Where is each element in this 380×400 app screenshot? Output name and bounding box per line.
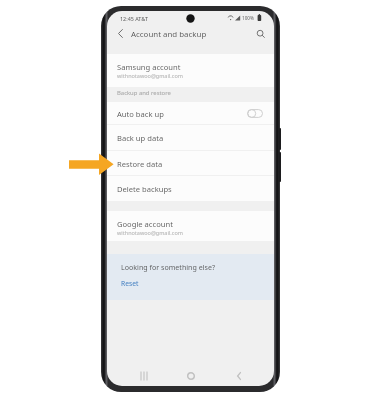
button[interactable]: Recent apps: [137, 368, 151, 384]
button[interactable]: Restore data: [107, 150, 274, 176]
button[interactable]: Back: [114, 27, 127, 40]
staticText: Google account: [117, 219, 173, 229]
button[interactable]: [107, 54, 274, 87]
button[interactable]: Reset: [121, 278, 151, 289]
staticText: withnotawoo@gmail.com: [117, 72, 183, 79]
button[interactable]: Search: [254, 27, 267, 40]
button[interactable]: Home: [184, 368, 198, 384]
staticText: Backup and restore: [117, 89, 171, 97]
staticText: 12:45 AT&T: [120, 15, 148, 22]
button[interactable]: [107, 211, 274, 241]
button[interactable]: Auto back up: [107, 102, 274, 124]
button[interactable]: Back up data: [107, 124, 274, 150]
button[interactable]: Back: [232, 368, 246, 384]
staticText: Looking for something else?: [121, 262, 216, 272]
staticText: Restore data: [117, 159, 163, 169]
staticText: 100%: [242, 15, 254, 21]
staticText: Account and backup: [131, 29, 207, 40]
staticText: Auto back up: [117, 109, 164, 119]
staticText: Back up data: [117, 133, 164, 143]
staticText: Samsung account: [117, 62, 181, 72]
staticText: Delete backups: [117, 184, 172, 194]
staticText: withnotawoo@gmail.com: [117, 229, 183, 236]
staticText: Reset: [121, 279, 139, 288]
button[interactable]: Delete backups: [107, 175, 274, 201]
